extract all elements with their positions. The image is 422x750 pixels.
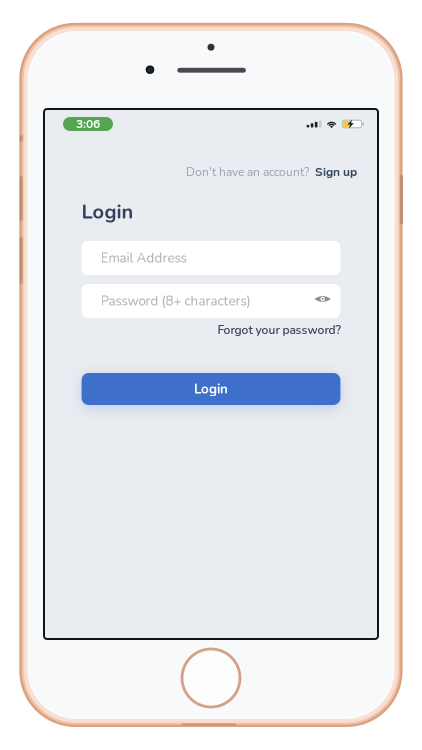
staticText: Forgot your password?	[217, 322, 340, 338]
staticText: Login	[194, 380, 228, 398]
button[interactable]: Forgot your password?	[82, 322, 340, 338]
button[interactable]: Login	[82, 373, 340, 405]
staticText: Don't have an account?	[186, 164, 309, 180]
staticText: 3:06	[76, 116, 100, 132]
button[interactable]: Show password	[311, 289, 334, 313]
staticText: Password (8+ characters)	[101, 292, 251, 310]
staticText: Sign up	[309, 164, 357, 180]
button[interactable]: Don't have an account?	[44, 164, 378, 180]
staticText: Email Address	[101, 249, 187, 267]
staticText: Login	[82, 198, 134, 226]
